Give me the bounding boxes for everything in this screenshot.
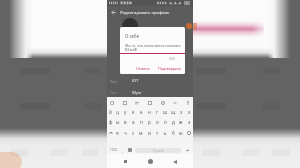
button[interactable]: ц <box>114 106 121 117</box>
staticText: р <box>148 119 151 125</box>
button[interactable]: г <box>153 106 161 117</box>
staticText: т <box>156 130 159 136</box>
button[interactable]: д <box>169 117 177 127</box>
staticText: Муж <box>132 90 142 96</box>
button[interactable]: Shift <box>107 127 114 138</box>
button[interactable]: ч <box>121 127 129 138</box>
button[interactable]: з <box>177 106 185 117</box>
staticText: й <box>109 109 112 115</box>
button[interactable]: у <box>121 106 129 117</box>
staticText: а <box>132 119 135 125</box>
button[interactable]: Backspace <box>185 127 193 138</box>
button[interactable]: Emoji <box>128 148 132 152</box>
button[interactable]: е <box>137 106 145 117</box>
button[interactable]: ?123 <box>109 146 118 154</box>
button[interactable]: Back <box>107 6 120 19</box>
staticText: с <box>132 130 135 136</box>
staticText: Русский <box>153 149 164 153</box>
button[interactable]: к <box>129 106 137 117</box>
button[interactable]: Home <box>145 156 156 167</box>
staticText: 4/50 <box>169 57 175 61</box>
staticText: ЮтиФ <box>125 47 138 53</box>
button[interactable]: ь <box>161 127 169 138</box>
button[interactable]: м <box>137 127 145 138</box>
button[interactable]: Recents <box>120 156 131 167</box>
staticText: ш <box>163 109 168 115</box>
button[interactable]: п <box>137 117 145 127</box>
staticText: к <box>132 109 135 115</box>
button[interactable]: о <box>153 117 161 127</box>
staticText: б <box>172 130 175 136</box>
button[interactable]: ы <box>114 117 121 127</box>
button[interactable]: щ <box>169 106 177 117</box>
staticText: О себе <box>125 33 140 39</box>
button[interactable]: в <box>121 117 129 127</box>
staticText: ц <box>116 109 119 115</box>
staticText: о <box>156 119 159 125</box>
button[interactable]: ш <box>161 106 169 117</box>
staticText: Пол <box>110 90 117 95</box>
staticText: ЮТ <box>132 78 139 84</box>
staticText: е <box>140 109 143 115</box>
staticText: ю <box>179 130 183 136</box>
staticText: щ <box>171 109 176 115</box>
button[interactable]: р <box>145 117 153 127</box>
button[interactable]: Back <box>169 156 180 167</box>
staticText: и <box>148 130 151 136</box>
button[interactable]: а <box>129 117 137 127</box>
button[interactable]: Keyboard tool 5 <box>171 99 179 107</box>
button[interactable]: Comma <box>121 147 125 154</box>
staticText: л <box>164 119 167 125</box>
button[interactable]: Keyboard tool 2 <box>133 99 141 107</box>
staticText: п <box>140 119 143 125</box>
staticText: д <box>172 119 175 125</box>
staticText: э <box>188 119 191 125</box>
staticText: х <box>188 109 191 115</box>
button[interactable]: т <box>153 127 161 138</box>
staticText: ?123 <box>110 148 117 152</box>
button[interactable]: ф <box>107 117 114 127</box>
staticText: г <box>156 109 159 115</box>
staticText: ф <box>109 119 113 125</box>
button[interactable]: й <box>107 106 114 117</box>
button[interactable]: н <box>145 106 153 117</box>
button[interactable]: Пол <box>107 87 193 98</box>
button[interactable]: Keyboard tool 1 <box>121 99 129 107</box>
button[interactable]: л <box>161 117 169 127</box>
button[interactable]: я <box>114 127 121 138</box>
button[interactable]: х <box>185 106 193 117</box>
button[interactable]: ю <box>177 127 185 138</box>
button[interactable]: б <box>169 127 177 138</box>
staticText: ч <box>124 130 127 136</box>
staticText: Имя <box>110 79 118 84</box>
button[interactable]: Space <box>135 148 181 153</box>
button[interactable]: Keyboard tool 0 <box>108 99 116 107</box>
staticText: в <box>124 119 127 125</box>
staticText: ↵ <box>186 148 190 153</box>
button[interactable]: с <box>129 127 137 138</box>
button[interactable]: э <box>185 117 193 127</box>
button[interactable]: Enter <box>185 147 191 154</box>
staticText: ы <box>116 119 120 125</box>
button[interactable]: Keyboard tool 4 <box>159 99 167 107</box>
button[interactable]: Keyboard tool 6 <box>184 99 192 107</box>
staticText: Подтвердить <box>158 66 182 71</box>
staticText: , <box>122 148 124 153</box>
staticText: Отмена <box>136 66 150 71</box>
staticText: Мы те, кто попытается показать <box>125 43 181 48</box>
staticText: м <box>139 130 143 136</box>
staticText: ь <box>164 130 167 136</box>
button[interactable]: ж <box>177 117 185 127</box>
button[interactable]: Отмена <box>135 65 151 72</box>
button[interactable]: Подтвердить <box>157 65 183 72</box>
staticText: Редактировать профиль <box>120 10 170 16</box>
button[interactable]: Change photo <box>186 23 192 29</box>
staticText: у <box>124 109 127 115</box>
button[interactable]: и <box>145 127 153 138</box>
staticText: я <box>116 130 119 136</box>
staticText: н <box>148 109 151 115</box>
staticText: з <box>180 109 183 115</box>
staticText: ж <box>179 119 183 125</box>
button[interactable]: Имя <box>107 75 193 87</box>
button[interactable]: Keyboard tool 3 <box>146 99 154 107</box>
